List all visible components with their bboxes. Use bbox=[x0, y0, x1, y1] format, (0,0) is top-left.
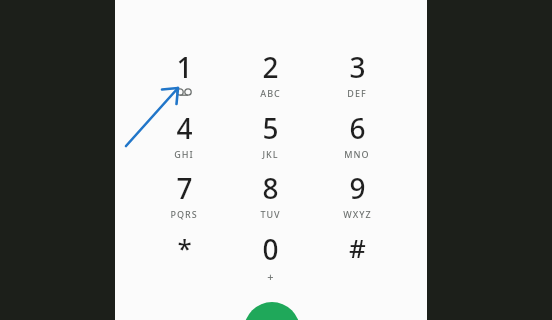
button[interactable]: 6 bbox=[318, 109, 396, 167]
staticText: 9 bbox=[349, 169, 366, 207]
staticText: 7 bbox=[176, 169, 193, 207]
button[interactable]: 1 bbox=[145, 48, 223, 106]
button[interactable]: 9 bbox=[318, 169, 396, 227]
button[interactable]: 3 bbox=[318, 48, 396, 106]
button[interactable]: 2 bbox=[231, 48, 309, 106]
staticText: 1 bbox=[176, 48, 193, 86]
staticText: TUV bbox=[260, 208, 281, 220]
button[interactable]: 7 bbox=[145, 169, 223, 227]
staticText: MNO bbox=[344, 148, 370, 160]
button[interactable]: Call bbox=[244, 302, 300, 320]
staticText: 2 bbox=[262, 48, 279, 86]
staticText: 8 bbox=[262, 169, 279, 207]
button[interactable]: 4 bbox=[145, 109, 223, 167]
staticText: JKL bbox=[262, 148, 279, 160]
staticText: GHI bbox=[174, 148, 194, 160]
staticText: 6 bbox=[349, 109, 366, 147]
staticText: * bbox=[177, 230, 192, 265]
staticText: 3 bbox=[349, 48, 366, 86]
staticText: PQRS bbox=[170, 208, 198, 220]
staticText: ABC bbox=[260, 87, 281, 99]
button[interactable]: * bbox=[145, 230, 223, 288]
staticText: DEF bbox=[347, 87, 367, 99]
staticText: 4 bbox=[176, 109, 193, 147]
button[interactable]: # bbox=[318, 230, 396, 288]
staticText: + bbox=[267, 269, 274, 284]
button[interactable]: 5 bbox=[231, 109, 309, 167]
button[interactable]: 0 bbox=[231, 230, 309, 288]
staticText: # bbox=[349, 230, 366, 265]
staticText: 0 bbox=[262, 230, 279, 268]
staticText: WXYZ bbox=[343, 208, 372, 220]
button[interactable]: 8 bbox=[231, 169, 309, 227]
staticText: 5 bbox=[262, 109, 279, 147]
